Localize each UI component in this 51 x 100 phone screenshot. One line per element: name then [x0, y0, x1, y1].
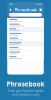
button[interactable]: [9, 13, 42, 17]
button[interactable]: [7, 37, 44, 41]
staticText: and phrases easily: [12, 93, 39, 97]
button[interactable]: [7, 46, 44, 50]
staticText: Phrasebook: [6, 80, 44, 88]
button[interactable]: [7, 51, 44, 55]
button[interactable]: Add: [39, 8, 42, 12]
staticText: Save your favorite words: [8, 89, 43, 93]
button[interactable]: [7, 55, 44, 60]
button[interactable]: [7, 23, 44, 27]
staticText: Phrasebook: [14, 7, 36, 12]
button[interactable]: Back: [9, 8, 12, 12]
button[interactable]: [7, 41, 44, 46]
button[interactable]: [7, 27, 44, 32]
button[interactable]: [7, 32, 44, 36]
button[interactable]: [7, 18, 44, 22]
